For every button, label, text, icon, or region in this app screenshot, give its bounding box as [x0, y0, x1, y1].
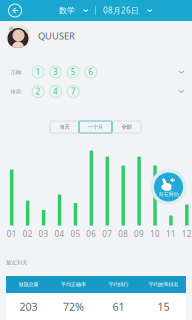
staticText: 错误:	[11, 88, 22, 95]
staticText: 一个月	[88, 124, 103, 130]
staticText: 09	[134, 228, 144, 239]
staticText: 平均正确率	[61, 281, 86, 288]
staticText: 08月26日	[103, 5, 139, 16]
staticText: 4	[53, 86, 58, 97]
staticText: 12	[182, 228, 192, 239]
staticText: 3	[53, 67, 58, 77]
staticText: 平均排行	[108, 281, 128, 288]
button[interactable]: 一个月	[79, 121, 112, 133]
staticText: 最近30天	[6, 259, 27, 266]
staticText: 72%	[63, 299, 84, 314]
staticText: 6	[88, 67, 93, 77]
staticText: 05	[70, 228, 80, 239]
staticText: 做题总量	[18, 281, 38, 288]
staticText: 61	[112, 299, 124, 314]
staticText: 正确:	[11, 68, 22, 76]
staticText: 03	[39, 228, 49, 239]
button[interactable]: 08月26日	[103, 0, 152, 21]
staticText: 全部	[121, 124, 131, 130]
button[interactable]: Back	[4, 0, 26, 21]
staticText: 203	[19, 299, 37, 314]
staticText: 5	[71, 67, 76, 77]
staticText: QUUSER	[38, 30, 75, 42]
staticText: 数学	[59, 6, 75, 15]
staticText: 15	[157, 299, 169, 314]
button[interactable]: 正确:	[11, 62, 185, 81]
staticText: 11	[166, 228, 176, 239]
staticText: 02	[23, 228, 33, 239]
staticText: 当天	[59, 124, 69, 130]
staticText: 07	[102, 228, 112, 239]
staticText: 10	[150, 228, 160, 239]
staticText: 04	[54, 228, 64, 239]
staticText: 向右滑动	[158, 191, 178, 198]
button[interactable]: 错误:	[11, 82, 185, 101]
staticText: 01	[7, 228, 17, 239]
staticText: 1	[35, 67, 40, 77]
staticText: 平均效率排名	[148, 281, 178, 288]
button[interactable]: QUUSER	[6, 23, 186, 49]
staticText: 7	[71, 86, 76, 97]
button[interactable]: 全部	[112, 121, 141, 133]
button[interactable]: 数学	[59, 0, 88, 21]
staticText: 06	[86, 228, 96, 239]
staticText: 08	[118, 228, 128, 239]
button[interactable]: 当天	[50, 121, 79, 133]
staticText: 2	[35, 86, 40, 97]
